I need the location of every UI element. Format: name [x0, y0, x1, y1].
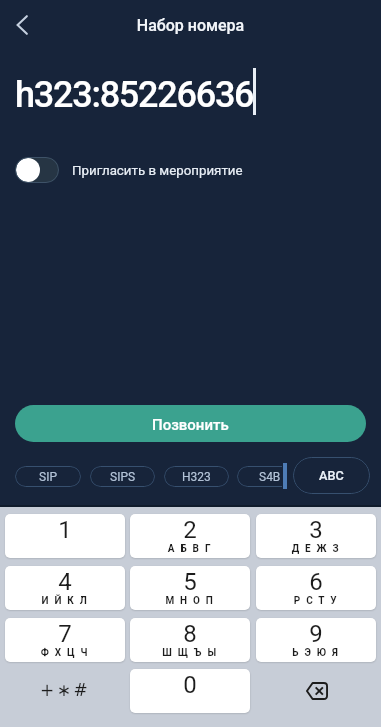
- staticText: 6: [256, 568, 376, 596]
- button[interactable]: 8: [130, 618, 250, 662]
- button[interactable]: ABC: [293, 457, 370, 494]
- staticText: М Н О П: [130, 595, 250, 607]
- button[interactable]: 0: [130, 669, 250, 713]
- button[interactable]: S4B: [237, 466, 282, 487]
- button[interactable]: 7: [5, 618, 125, 662]
- button[interactable]: 9: [256, 618, 376, 662]
- staticText: h323:85226636: [15, 74, 254, 116]
- staticText: Ь Э Ю Я: [256, 647, 376, 659]
- button[interactable]: Пригласить в мероприятие: [15, 157, 59, 183]
- staticText: Ф Х Ц Ч: [5, 647, 125, 659]
- button[interactable]: SIP: [15, 466, 81, 487]
- staticText: Позвонить: [152, 416, 229, 434]
- staticText: Ш Щ Ъ Ы: [130, 647, 250, 659]
- staticText: +∗#: [40, 680, 91, 700]
- staticText: 7: [5, 620, 125, 648]
- button[interactable]: Позвонить: [15, 405, 366, 442]
- button[interactable]: H323: [164, 466, 229, 487]
- button[interactable]: 1: [5, 514, 125, 558]
- button[interactable]: Backspace: [256, 669, 376, 713]
- button[interactable]: 3: [256, 514, 376, 558]
- button[interactable]: SIPS: [90, 466, 155, 487]
- staticText: 0: [130, 671, 250, 699]
- staticText: И Й К Л: [5, 595, 125, 607]
- staticText: S4B: [259, 470, 281, 484]
- button[interactable]: 5: [130, 566, 250, 610]
- staticText: Набор номера: [0, 16, 381, 35]
- staticText: 8: [130, 620, 250, 648]
- staticText: 5: [130, 568, 250, 596]
- button[interactable]: +∗#: [5, 669, 125, 713]
- staticText: ABC: [319, 468, 344, 483]
- staticText: SIPS: [110, 470, 136, 484]
- staticText: 3: [256, 516, 376, 544]
- staticText: SIP: [39, 470, 57, 484]
- staticText: 2: [130, 516, 250, 544]
- staticText: 9: [256, 620, 376, 648]
- staticText: 4: [5, 568, 125, 596]
- staticText: H323: [182, 470, 211, 484]
- staticText: А Б В Г: [130, 543, 250, 555]
- staticText: 1: [5, 516, 125, 544]
- button[interactable]: 2: [130, 514, 250, 558]
- staticText: Р С Т У: [256, 595, 376, 607]
- staticText: Пригласить в мероприятие: [72, 163, 243, 179]
- button[interactable]: 4: [5, 566, 125, 610]
- button[interactable]: 6: [256, 566, 376, 610]
- button[interactable]: Back: [1, 4, 43, 46]
- staticText: Д Е Ж З: [256, 543, 376, 555]
